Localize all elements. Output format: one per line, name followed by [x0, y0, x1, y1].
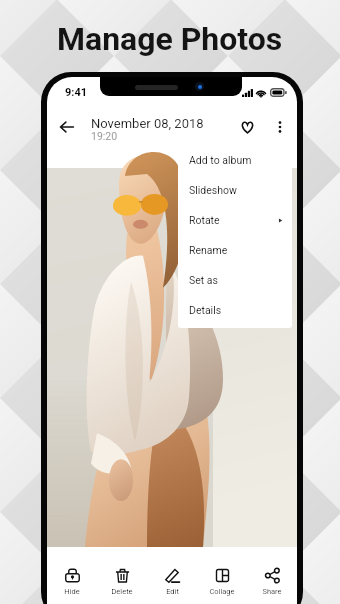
staticText: Share	[262, 587, 282, 596]
button[interactable]: Favourite	[234, 114, 260, 140]
staticText: Collage	[209, 587, 235, 596]
button[interactable]: Hide	[47, 568, 97, 596]
staticText: 19:20	[91, 130, 118, 142]
button[interactable]: Add to album	[178, 145, 292, 175]
staticText: Slideshow	[189, 184, 237, 196]
staticText: November 08, 2018	[91, 116, 204, 131]
staticText: Edit	[166, 587, 179, 596]
staticText: Rotate	[189, 214, 220, 226]
staticText: Details	[189, 304, 222, 316]
button[interactable]: Share	[247, 568, 297, 596]
button[interactable]: Edit	[147, 568, 197, 596]
staticText: Delete	[111, 587, 133, 596]
button[interactable]: Rotate	[178, 205, 292, 235]
staticText: Manage Photos	[57, 20, 283, 58]
button[interactable]: Back	[54, 114, 80, 140]
button[interactable]: More options	[268, 115, 292, 139]
button[interactable]: Collage	[197, 568, 247, 596]
staticText: Hide	[64, 587, 80, 596]
staticText: Add to album	[189, 154, 252, 166]
button[interactable]: Rename	[178, 235, 292, 265]
button[interactable]: Set as	[178, 265, 292, 295]
staticText: Set as	[189, 274, 218, 286]
button[interactable]: Details	[178, 295, 292, 325]
staticText: 9:41	[65, 86, 88, 99]
button[interactable]: Delete	[97, 568, 147, 596]
staticText: Rename	[189, 244, 228, 256]
button[interactable]: Slideshow	[178, 175, 292, 205]
